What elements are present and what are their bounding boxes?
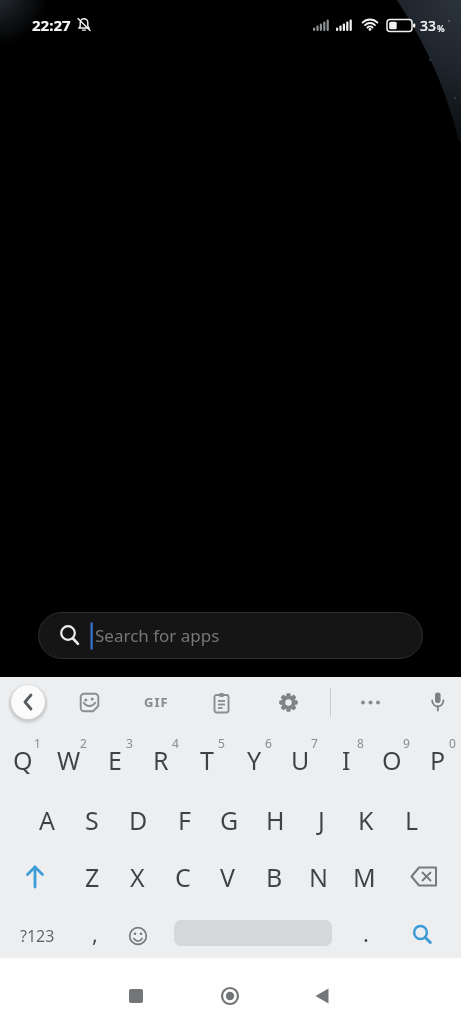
button[interactable]: I — [323, 731, 369, 789]
staticText: 4 — [172, 735, 179, 751]
staticText: B — [266, 860, 283, 894]
button[interactable] — [112, 972, 160, 1020]
button[interactable]: GIF — [134, 685, 178, 719]
button[interactable]: . — [348, 907, 384, 959]
button[interactable]: B — [251, 848, 297, 906]
staticText: 2 — [80, 735, 87, 751]
button[interactable] — [121, 919, 155, 953]
staticText: V — [220, 860, 236, 894]
staticText: I — [342, 743, 351, 777]
staticText: Y — [247, 743, 262, 777]
staticText: Z — [85, 860, 100, 894]
button[interactable]: X — [114, 848, 160, 906]
button[interactable]: F — [161, 791, 207, 849]
staticText: D — [129, 803, 148, 837]
staticText: C — [175, 860, 191, 894]
staticText: 22:27 — [32, 15, 71, 35]
staticText: A — [39, 803, 55, 837]
button[interactable]: H — [252, 791, 298, 849]
button[interactable]: , — [77, 907, 113, 959]
staticText: O — [382, 743, 402, 777]
button[interactable] — [404, 917, 442, 955]
staticText: % — [437, 22, 445, 34]
staticText: N — [309, 860, 329, 894]
staticText: 1 — [34, 735, 41, 751]
button[interactable] — [11, 685, 45, 719]
button[interactable] — [355, 687, 386, 718]
staticText: 0 — [449, 735, 456, 751]
button[interactable]: U — [277, 731, 323, 789]
staticText: P — [430, 743, 446, 777]
staticText: Q — [13, 743, 33, 777]
button[interactable]: O — [369, 731, 415, 789]
button[interactable]: K — [343, 791, 389, 849]
staticText: S — [85, 803, 99, 837]
button[interactable]: A — [24, 791, 70, 849]
staticText: , — [92, 918, 98, 948]
staticText: Search for apps — [95, 624, 220, 647]
button[interactable]: E — [92, 731, 138, 789]
staticText: F — [178, 803, 191, 837]
staticText: U — [291, 743, 310, 777]
button[interactable] — [273, 687, 304, 718]
button[interactable] — [298, 972, 346, 1020]
button[interactable]: W — [46, 731, 92, 789]
staticText: W — [57, 743, 81, 777]
staticText: . — [363, 918, 369, 948]
button[interactable]: R — [138, 731, 184, 789]
button[interactable] — [74, 687, 105, 718]
button[interactable]: L — [389, 791, 435, 849]
staticText: H — [266, 803, 285, 837]
staticText: G — [220, 803, 239, 837]
button[interactable] — [400, 851, 450, 903]
button[interactable]: Y — [231, 731, 277, 789]
staticText: K — [358, 803, 374, 837]
staticText: 33 — [420, 16, 437, 34]
button[interactable]: J — [298, 791, 344, 849]
button[interactable]: Z — [69, 848, 115, 906]
button[interactable]: V — [205, 848, 251, 906]
button[interactable]: Q — [0, 731, 46, 789]
staticText: J — [318, 803, 325, 837]
staticText: X — [130, 860, 145, 894]
staticText: 8 — [357, 735, 364, 751]
staticText: M — [353, 860, 376, 894]
staticText: 5 — [218, 735, 225, 751]
staticText: T — [200, 743, 214, 777]
button[interactable] — [11, 851, 59, 903]
staticText: GIF — [144, 693, 169, 711]
button[interactable]: ?123 — [8, 910, 66, 962]
button[interactable] — [422, 686, 453, 717]
button[interactable] — [206, 687, 237, 718]
staticText: 9 — [403, 735, 410, 751]
button[interactable] — [206, 972, 254, 1020]
staticText: 3 — [126, 735, 133, 751]
button[interactable]: N — [296, 848, 342, 906]
staticText: ?123 — [20, 925, 55, 947]
button[interactable]: S — [69, 791, 115, 849]
button[interactable]: T — [184, 731, 230, 789]
button[interactable]: D — [115, 791, 161, 849]
staticText: R — [153, 743, 169, 777]
button[interactable]: M — [341, 848, 387, 906]
button[interactable]: C — [160, 848, 206, 906]
button[interactable]: P — [415, 731, 461, 789]
button[interactable]: G — [206, 791, 252, 849]
staticText: E — [108, 743, 122, 777]
staticText: 6 — [265, 735, 272, 751]
staticText: L — [405, 803, 419, 837]
staticText: 7 — [311, 735, 318, 751]
button[interactable]: Search for apps — [38, 612, 423, 659]
